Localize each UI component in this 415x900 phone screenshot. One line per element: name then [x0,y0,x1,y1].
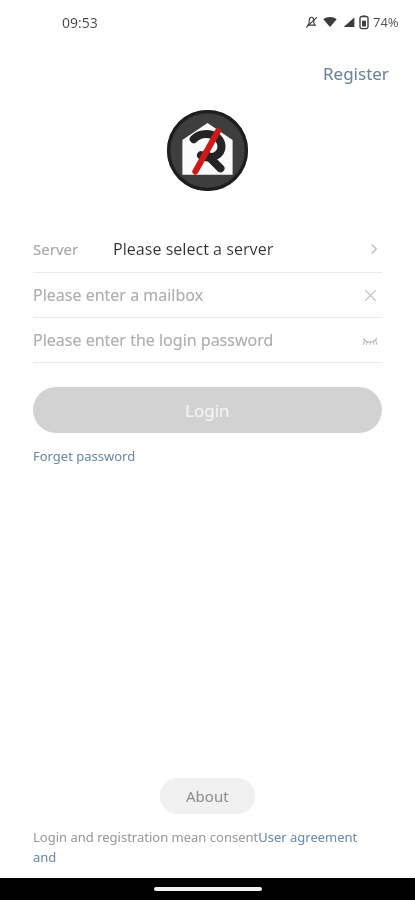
button[interactable]: Please enter the login password [0,318,415,362]
staticText: Register [323,62,389,85]
staticText: Please enter a mailbox [33,284,204,306]
button[interactable]: Forget password [28,443,141,469]
other: Select server [366,241,382,257]
staticText: Server [33,239,79,259]
button[interactable]: Please enter a mailbox [0,273,415,317]
button[interactable]: Show password [358,328,382,352]
staticText: 74% [373,13,399,31]
staticText: 09:53 [62,13,98,32]
staticText: Please enter the login password [33,329,274,351]
button[interactable]: Register [317,58,395,89]
staticText: Login [185,399,230,422]
staticText: Please select a server [113,238,274,260]
staticText: Login and registration mean consentUser … [33,828,382,866]
staticText: About [186,786,229,806]
button[interactable]: Login and registration mean consentUser … [0,828,415,866]
button[interactable]: Clear mailbox [358,283,382,307]
button[interactable]: Login [33,387,382,433]
staticText: Forget password [33,447,136,465]
button[interactable]: Server [0,226,415,272]
button[interactable]: About [160,778,255,814]
